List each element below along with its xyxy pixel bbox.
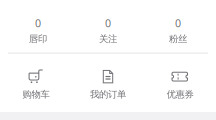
button[interactable]: 0 [73, 16, 143, 45]
staticText: 购物车 [22, 89, 49, 100]
staticText: 0 [35, 16, 41, 30]
button[interactable]: 我的订单 [72, 70, 144, 100]
button[interactable]: 0 [3, 16, 73, 45]
button[interactable]: 0 [143, 16, 213, 45]
staticText: 关注 [99, 33, 117, 45]
staticText: 唇印 [29, 33, 47, 45]
button[interactable]: 优惠券 [144, 70, 216, 100]
staticText: 优惠券 [166, 89, 193, 100]
staticText: 0 [105, 16, 111, 30]
staticText: 粉丝 [169, 33, 187, 45]
staticText: 我的订单 [90, 89, 126, 100]
staticText: 0 [175, 16, 181, 30]
button[interactable]: 购物车 [0, 70, 72, 100]
